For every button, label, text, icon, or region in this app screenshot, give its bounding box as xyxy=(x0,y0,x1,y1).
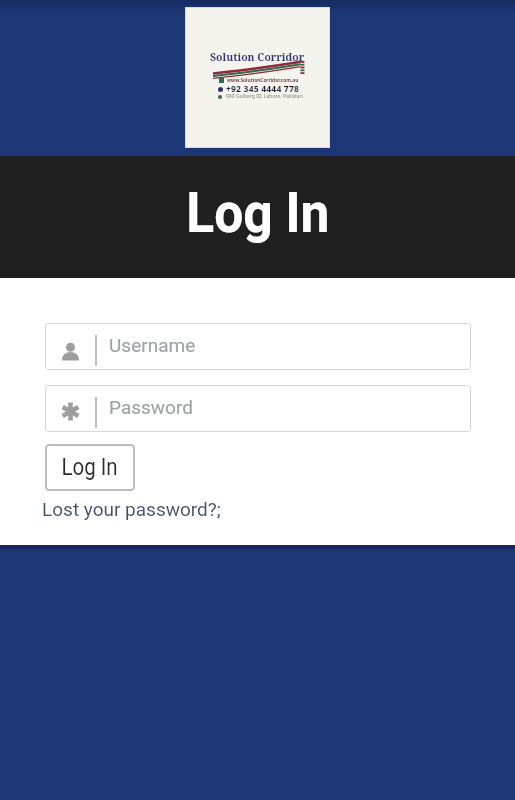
staticText: Solution Corridor xyxy=(210,50,305,64)
staticText: 999 Gulberg III, Lahore, Pakistan xyxy=(226,93,303,100)
button[interactable]: Username xyxy=(45,323,471,370)
staticText: Log In xyxy=(61,454,118,481)
staticText: Password xyxy=(109,396,193,418)
staticText: +92 345 4444 778 xyxy=(226,83,300,95)
staticText: Username xyxy=(109,334,196,356)
button[interactable]: Lost your password?; xyxy=(42,498,221,520)
button[interactable]: Log In xyxy=(45,444,135,491)
staticText: www.SolutionCorridor.com.au xyxy=(227,77,299,84)
button[interactable]: Password xyxy=(45,385,471,432)
staticText: Log In xyxy=(186,180,330,246)
